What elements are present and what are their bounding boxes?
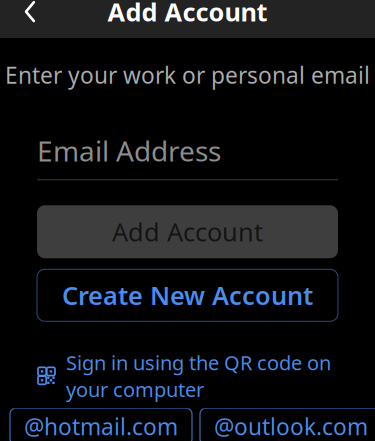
button[interactable]: Create New Account: [37, 269, 338, 321]
button[interactable]: Sign in using the QR code on your comput…: [37, 343, 338, 408]
staticText: @hotmail.com: [24, 411, 178, 441]
button[interactable]: @outlook.com: [200, 408, 375, 441]
staticText: Add Account: [107, 0, 267, 28]
staticText: Enter your work or personal email: [5, 60, 370, 90]
staticText: Email Address: [37, 132, 221, 169]
staticText: Create New Account: [62, 278, 313, 312]
button[interactable]: Add Account: [37, 205, 338, 258]
staticText: @outlook.com: [214, 411, 368, 441]
button[interactable]: @hotmail.com: [10, 408, 192, 441]
button[interactable]: Back: [8, 0, 52, 34]
staticText: Sign in using the QR code on your comput…: [66, 349, 331, 402]
staticText: Add Account: [112, 215, 263, 249]
